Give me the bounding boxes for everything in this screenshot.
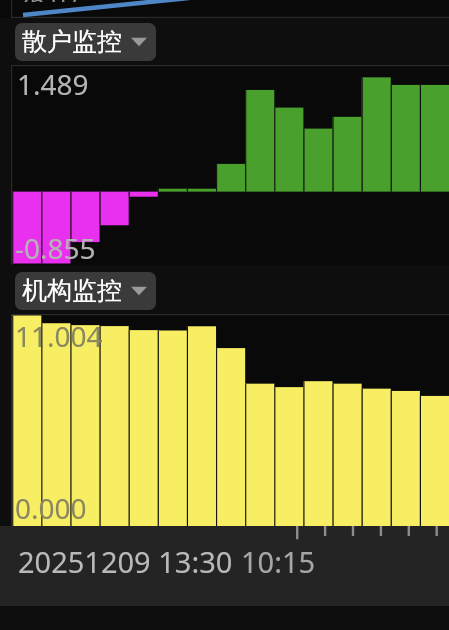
button[interactable]: 散户监控 bbox=[15, 23, 156, 61]
staticText: 0.000 bbox=[15, 489, 87, 527]
other: Expand bbox=[131, 35, 147, 48]
staticText: 11.004 bbox=[15, 317, 103, 355]
staticText: 10:15 bbox=[241, 542, 316, 581]
other: Expand bbox=[131, 284, 147, 297]
button[interactable]: 机构监控 bbox=[15, 272, 156, 310]
button[interactable]: 11.004 bbox=[11, 314, 449, 526]
staticText: 26.07 bbox=[16, 0, 80, 2]
staticText: 1.489 bbox=[17, 65, 89, 103]
staticText: 机构监控 bbox=[22, 275, 122, 306]
button[interactable]: 1.489 bbox=[11, 65, 449, 265]
staticText: 20251209 13:30 bbox=[18, 542, 233, 581]
staticText: -0.855 bbox=[15, 229, 96, 267]
staticText: 散户监控 bbox=[22, 26, 122, 57]
